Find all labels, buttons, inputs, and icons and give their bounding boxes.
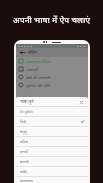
staticText: खाते की जानकारी <box>26 75 51 80</box>
other: Clear <box>78 99 84 105</box>
button[interactable]: ऑफ़लाइन वीडियो <box>16 57 88 65</box>
staticText: तेलुगू <box>20 129 27 134</box>
staticText: भाषा चुनें <box>26 67 39 72</box>
staticText: ऑफ़लाइन वीडियो <box>26 59 51 64</box>
staticText: बंगाली <box>20 159 29 164</box>
staticText: भाषा चुनें <box>20 99 34 105</box>
staticText: सेटिंग <box>28 50 37 56</box>
staticText: हिंदी <box>20 119 26 124</box>
staticText: English <box>20 109 33 114</box>
button[interactable]: मराठी <box>16 147 88 156</box>
button[interactable]: हिंदी <box>16 117 88 126</box>
button[interactable]: भाषा चुनें <box>16 97 88 106</box>
button[interactable]: भाषा चुनें <box>16 65 88 73</box>
button[interactable]: English <box>16 107 88 116</box>
staticText: तमिल <box>20 139 28 144</box>
button[interactable]: मलयालम <box>16 177 88 183</box>
button[interactable]: बंगाली <box>16 157 88 166</box>
button[interactable]: सूचनाएं और ध्वनि <box>16 81 88 89</box>
button[interactable]: Back <box>19 49 26 56</box>
button[interactable]: तेलुगू <box>16 127 88 136</box>
button[interactable]: कन्नड़ <box>16 167 88 176</box>
button[interactable]: खाते की जानकारी <box>16 73 88 81</box>
staticText: अपनी भाषा में ऐप चलाएं <box>4 14 99 26</box>
staticText: मराठी <box>20 149 28 154</box>
button[interactable]: तमिल <box>16 137 88 146</box>
staticText: सूचनाएं और ध्वनि <box>26 83 51 88</box>
staticText: मलयालम <box>20 178 33 183</box>
staticText: कन्नड़ <box>20 169 28 174</box>
